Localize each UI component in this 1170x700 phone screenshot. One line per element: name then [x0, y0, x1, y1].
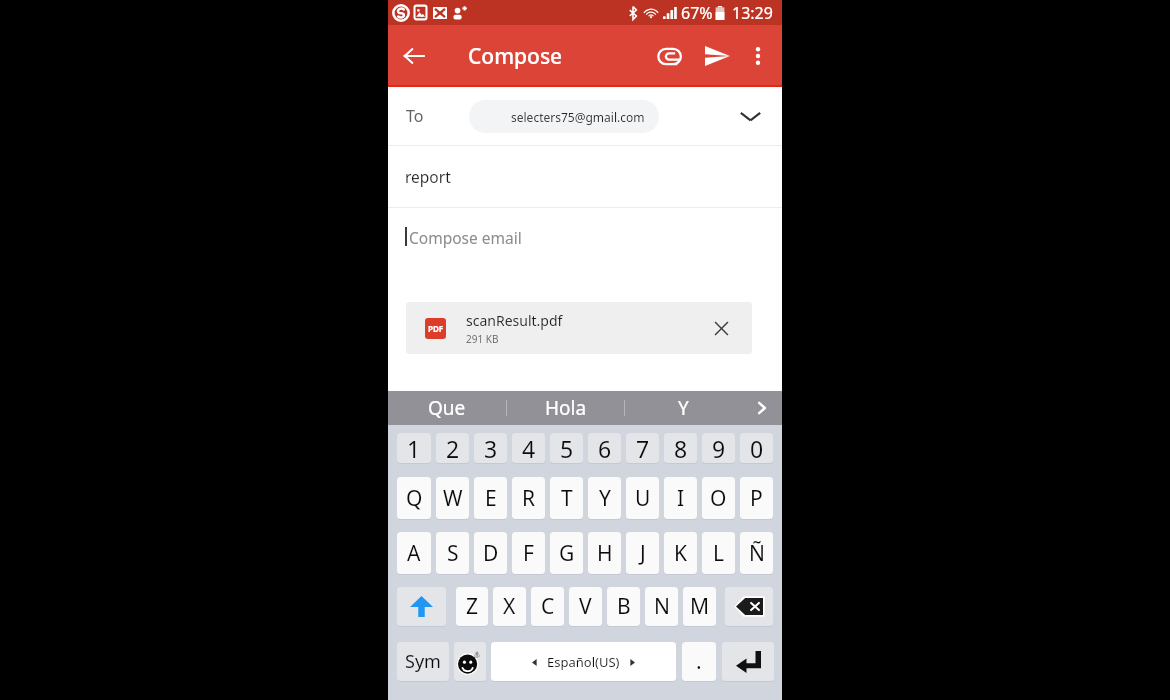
staticText: 2 — [446, 433, 460, 463]
staticText: 7 — [636, 433, 650, 463]
staticText: Compose — [468, 42, 563, 71]
button[interactable]: 0 — [740, 433, 773, 463]
button[interactable]: Z — [456, 587, 488, 626]
staticText: 3 — [484, 433, 498, 463]
button[interactable]: H — [588, 532, 621, 574]
staticText: scanResult.pdf — [466, 311, 563, 330]
staticText: 9 — [712, 433, 726, 463]
button[interactable]: Que — [388, 391, 506, 425]
button[interactable]: N — [645, 587, 678, 626]
staticText: A — [407, 539, 421, 568]
button[interactable]: Compose email — [388, 208, 782, 302]
staticText: X — [503, 592, 516, 621]
button[interactable]: Space — [491, 642, 676, 681]
button[interactable]: report — [388, 146, 782, 207]
button[interactable]: C — [531, 587, 564, 626]
staticText: 291 KB — [466, 332, 499, 346]
staticText: G — [559, 539, 575, 568]
button[interactable]: Hola — [507, 391, 624, 425]
button[interactable]: 7 — [626, 433, 659, 463]
staticText: E — [485, 484, 497, 513]
button[interactable]: 9 — [702, 433, 735, 463]
button[interactable]: Expand recipients — [726, 87, 774, 145]
staticText: K — [674, 539, 687, 568]
button[interactable]: I — [664, 477, 697, 519]
staticText: Compose email — [409, 227, 522, 248]
button[interactable]: X — [493, 587, 526, 626]
staticText: W — [443, 484, 463, 513]
staticText: Hola — [545, 395, 587, 421]
staticText: B — [617, 592, 631, 621]
button[interactable]: Sym — [397, 642, 449, 681]
button[interactable]: U — [626, 477, 659, 519]
button[interactable]: A — [397, 532, 431, 574]
staticText: 8 — [674, 433, 688, 463]
button[interactable]: 6 — [588, 433, 621, 463]
button[interactable]: 1 — [397, 433, 431, 463]
staticText: Sym — [405, 649, 441, 674]
button[interactable]: Y — [588, 477, 621, 519]
button[interactable]: Backspace — [725, 587, 773, 626]
button[interactable]: More suggestions — [742, 391, 782, 425]
staticText: L — [713, 539, 725, 568]
button[interactable]: More options — [739, 25, 777, 87]
staticText: Z — [466, 592, 479, 621]
staticText: Que — [428, 395, 466, 421]
staticText: 1 — [407, 433, 421, 463]
button[interactable]: 8 — [664, 433, 697, 463]
button[interactable]: To — [388, 87, 782, 145]
button[interactable]: 2 — [436, 433, 469, 463]
staticText: Ñ — [749, 539, 765, 568]
button[interactable]: Q — [397, 477, 431, 519]
staticText: M — [690, 592, 710, 621]
staticText: Y — [678, 395, 689, 421]
button[interactable]: O — [702, 477, 735, 519]
button[interactable]: Remove attachment — [699, 306, 743, 350]
staticText: 4 — [522, 433, 536, 463]
button[interactable]: V — [569, 587, 602, 626]
staticText: PDF — [428, 323, 444, 334]
button[interactable]: S — [436, 532, 469, 574]
button[interactable]: W — [436, 477, 469, 519]
button[interactable]: Y — [625, 391, 742, 425]
button[interactable]: J — [626, 532, 659, 574]
staticText: S — [447, 539, 459, 568]
button[interactable]: Enter — [722, 642, 774, 681]
button[interactable]: 3 — [474, 433, 507, 463]
staticText: . — [696, 647, 702, 676]
button[interactable]: R — [512, 477, 545, 519]
staticText: I — [677, 484, 685, 513]
staticText: selecters75@gmail.com — [511, 109, 645, 125]
button[interactable]: Emoji — [454, 642, 486, 681]
staticText: 13:29 — [732, 2, 773, 24]
button[interactable]: L — [702, 532, 735, 574]
staticText: P — [750, 484, 763, 513]
staticText: C — [541, 592, 555, 621]
button[interactable]: PDF — [406, 302, 752, 354]
button[interactable]: M — [683, 587, 716, 626]
button[interactable]: G — [550, 532, 583, 574]
button[interactable]: Shift — [397, 587, 446, 626]
staticText: To — [406, 105, 424, 127]
button[interactable]: K — [664, 532, 697, 574]
button[interactable]: F — [512, 532, 545, 574]
button[interactable]: Send — [695, 25, 739, 87]
button[interactable]: Ñ — [740, 532, 773, 574]
button[interactable]: Back — [388, 25, 440, 87]
staticText: H — [597, 539, 613, 568]
staticText: V — [579, 592, 592, 621]
button[interactable]: P — [740, 477, 773, 519]
button[interactable]: Attach file — [648, 25, 692, 87]
button[interactable]: E — [474, 477, 507, 519]
staticText: Y — [599, 484, 611, 513]
button[interactable]: 4 — [512, 433, 545, 463]
button[interactable]: D — [474, 532, 507, 574]
staticText: O — [710, 484, 727, 513]
button[interactable]: 5 — [550, 433, 583, 463]
staticText: 0 — [750, 433, 764, 463]
staticText: D — [483, 539, 499, 568]
button[interactable]: T — [550, 477, 583, 519]
button[interactable]: B — [607, 587, 640, 626]
staticText: T — [561, 484, 573, 513]
button[interactable]: . — [682, 642, 716, 681]
